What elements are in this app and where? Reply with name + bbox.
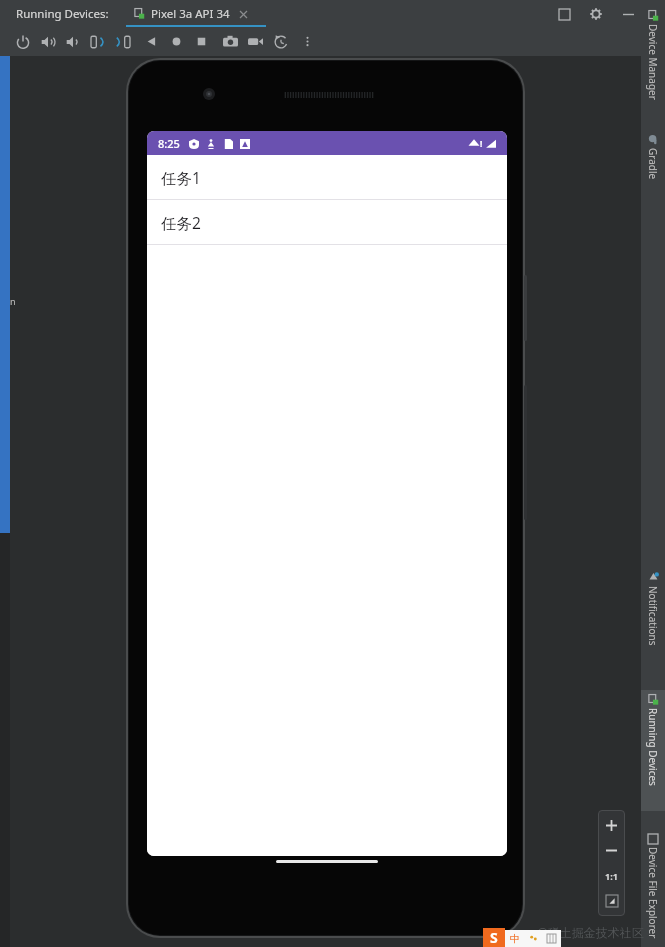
button[interactable]: Zoom in xyxy=(599,813,624,838)
button[interactable]: Notifications xyxy=(641,568,665,676)
button[interactable]: Rotate / history xyxy=(268,29,293,54)
button[interactable]: Rotate left xyxy=(85,29,110,54)
staticText: Running Devices: xyxy=(16,6,109,22)
staticText: 1:1 xyxy=(605,870,618,882)
button[interactable]: Power xyxy=(10,29,35,54)
staticText: 8:25 xyxy=(158,136,180,151)
staticText: 任务2 xyxy=(161,212,201,233)
button[interactable]: Close tab xyxy=(237,8,249,20)
button[interactable]: Overview xyxy=(189,29,214,54)
button[interactable]: Running Devices xyxy=(641,690,665,811)
button[interactable]: Settings xyxy=(587,5,605,23)
staticText: 任务1 xyxy=(161,167,201,188)
staticText: Device File Explorer xyxy=(646,847,660,939)
button[interactable]: Gradle xyxy=(641,130,665,192)
button[interactable]: Record screen xyxy=(243,29,268,54)
button[interactable]: Zoom to fit xyxy=(599,888,624,913)
staticText: Running Devices xyxy=(646,708,660,786)
button[interactable]: Rotate right xyxy=(110,29,135,54)
button[interactable]: Split window xyxy=(555,5,573,23)
button[interactable]: 任务2 xyxy=(147,200,507,244)
button[interactable]: Hide xyxy=(619,5,637,23)
button[interactable]: Volume down xyxy=(60,29,85,54)
staticText: Device Manager xyxy=(646,24,660,100)
button[interactable]: Home xyxy=(164,29,189,54)
button[interactable]: Actual size xyxy=(599,863,624,888)
button[interactable]: Back xyxy=(139,29,164,54)
staticText: Pixel 3a API 34 xyxy=(151,6,230,22)
button[interactable]: Pixel 3a API 34 xyxy=(126,0,257,27)
staticText: ! xyxy=(480,138,483,149)
button[interactable]: Zoom out xyxy=(599,838,624,863)
button[interactable]: More xyxy=(295,29,320,54)
button[interactable]: Device File Explorer xyxy=(641,830,665,947)
staticText: 中 xyxy=(510,932,520,945)
staticText: n xyxy=(10,295,16,307)
staticText: S xyxy=(490,928,498,947)
staticText: @稀土掘金技术社区 xyxy=(537,924,644,940)
button[interactable]: Volume up xyxy=(35,29,60,54)
staticText: Notifications xyxy=(646,586,660,646)
staticText: Gradle xyxy=(646,148,660,180)
button[interactable]: Screenshot xyxy=(218,29,243,54)
button[interactable]: 任务1 xyxy=(147,155,507,199)
button[interactable]: Device Manager xyxy=(641,6,665,120)
